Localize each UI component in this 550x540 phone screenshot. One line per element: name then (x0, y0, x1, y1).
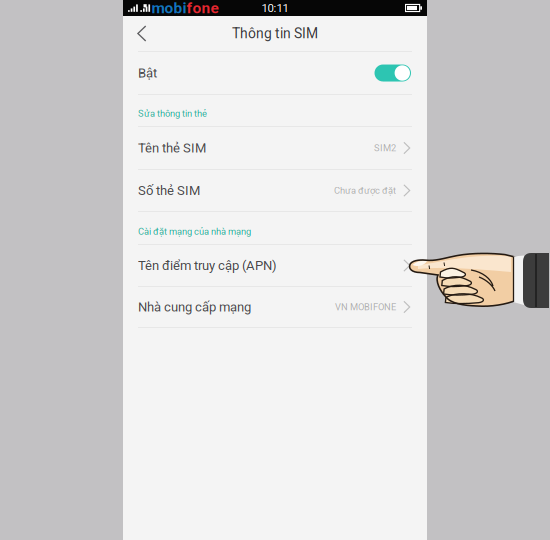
staticText: Tên điểm truy cập (APN) (138, 258, 277, 273)
staticText: Cài đặt mạng của nhà mạng (138, 226, 251, 237)
staticText: fone (187, 0, 219, 17)
button[interactable]: Tên thẻ SIM (123, 127, 427, 169)
button[interactable]: Tên điểm truy cập (APN) (123, 245, 427, 286)
button[interactable]: Nhà cung cấp mạng (123, 287, 427, 327)
button[interactable]: Back (123, 16, 161, 51)
button[interactable]: Số thẻ SIM (123, 170, 427, 211)
staticText: Sửa thông tin thẻ (138, 108, 207, 119)
staticText: Số thẻ SIM (138, 183, 200, 198)
staticText: Tên thẻ SIM (138, 140, 206, 156)
staticText: mobi (152, 0, 187, 17)
staticText: Chưa được đặt (334, 185, 396, 196)
staticText: VN MOBIFONE (335, 301, 396, 312)
staticText: Bật (138, 65, 157, 81)
button[interactable]: Bật (123, 52, 427, 94)
staticText: 10:11 (261, 1, 288, 15)
staticText: SIM2 (374, 142, 396, 153)
staticText: Thông tin SIM (232, 25, 318, 42)
staticText: Nhà cung cấp mạng (138, 299, 251, 315)
